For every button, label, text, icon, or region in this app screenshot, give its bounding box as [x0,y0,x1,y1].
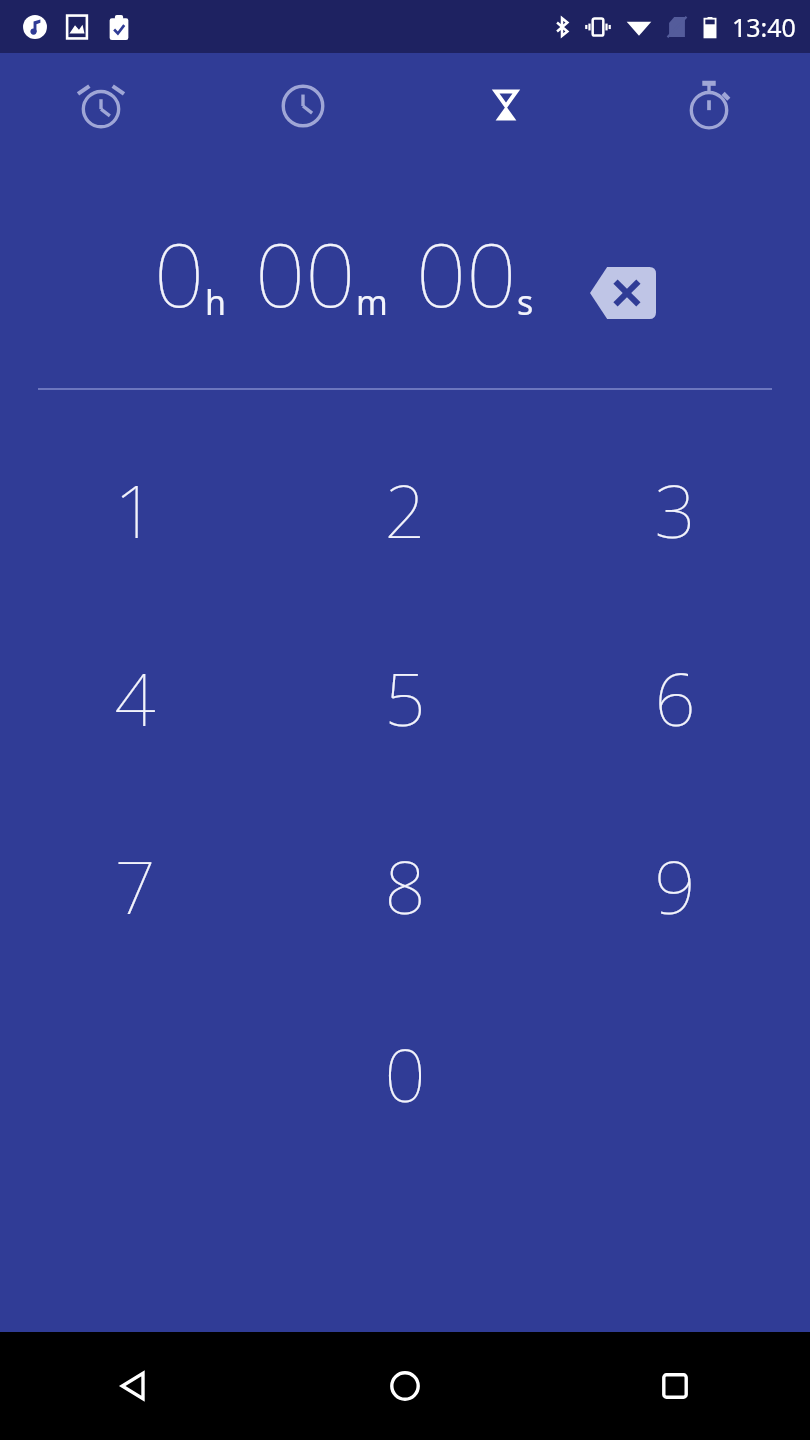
button[interactable]: Recent apps [540,1332,810,1440]
staticText: 2 [384,461,426,559]
staticText: 13:40 [732,10,796,44]
button[interactable]: Stopwatch [607,53,810,158]
button[interactable]: Backspace [590,267,656,319]
button[interactable]: Clock [202,53,404,158]
staticText: 0 [384,1025,426,1123]
staticText: m [356,279,388,325]
button[interactable]: 2 [270,416,540,604]
button[interactable]: Back [0,1332,270,1440]
staticText: 1 [114,461,156,559]
button[interactable]: Home [270,1332,540,1440]
button[interactable]: Timer [404,53,607,158]
button[interactable]: 3 [540,416,810,604]
staticText: 6 [654,649,696,747]
button[interactable]: 5 [270,604,540,792]
button[interactable]: 8 [270,792,540,980]
staticText: 00 [416,213,517,333]
staticText: h [205,279,227,325]
staticText: 3 [654,461,696,559]
button[interactable]: 6 [540,604,810,792]
staticText: 9 [654,837,696,935]
button[interactable]: 4 [0,604,270,792]
button[interactable]: 0 [270,980,540,1168]
staticText: 5 [384,649,426,747]
button[interactable]: 9 [540,792,810,980]
staticText: 00 [255,213,356,333]
staticText: 4 [114,649,156,747]
button[interactable]: 1 [0,416,270,604]
staticText: s [517,279,534,325]
button[interactable]: Alarm [0,53,202,158]
button[interactable]: 7 [0,792,270,980]
staticText: 8 [384,837,426,935]
staticText: 7 [114,837,156,935]
staticText: 0 [154,213,205,333]
